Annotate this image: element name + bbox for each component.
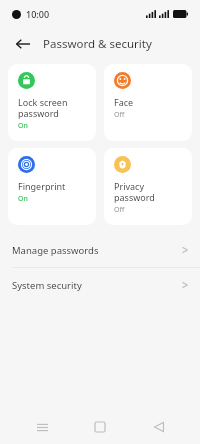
staticText: On bbox=[18, 121, 28, 131]
button[interactable]: Face bbox=[104, 64, 192, 141]
button[interactable]: Home bbox=[83, 410, 117, 444]
button[interactable]: Privacy password bbox=[104, 148, 192, 225]
staticText: Manage passwords bbox=[12, 244, 99, 257]
button[interactable]: Back bbox=[142, 410, 176, 444]
staticText: On bbox=[18, 194, 28, 204]
staticText: Off bbox=[114, 205, 125, 215]
staticText: System security bbox=[12, 279, 82, 292]
staticText: Password & security bbox=[43, 36, 152, 52]
button[interactable]: Back bbox=[12, 33, 34, 55]
staticText: Off bbox=[114, 110, 125, 120]
staticText: Fingerprint bbox=[18, 180, 66, 192]
button[interactable]: Recent apps bbox=[25, 410, 59, 444]
staticText: Privacy password bbox=[114, 180, 155, 203]
button[interactable]: Lock screen password bbox=[8, 64, 96, 141]
staticText: Lock screen password bbox=[18, 96, 68, 119]
staticText: Face bbox=[114, 96, 134, 108]
button[interactable]: Manage passwords bbox=[0, 233, 200, 267]
staticText: 10:00 bbox=[26, 8, 50, 20]
button[interactable]: Fingerprint bbox=[8, 148, 96, 225]
button[interactable]: System security bbox=[0, 268, 200, 302]
